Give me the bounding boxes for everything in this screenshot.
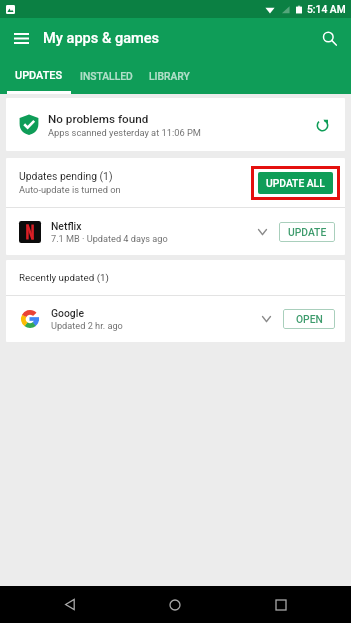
staticText: UPDATES [15, 69, 63, 82]
button[interactable]: Netflix [6, 208, 345, 255]
staticText: Updates pending (1) [19, 170, 113, 182]
button[interactable]: Home [157, 586, 193, 623]
button[interactable]: Back [52, 586, 88, 623]
staticText: Google [51, 307, 84, 319]
staticText: 7.1 MB · Updated 4 days ago [51, 233, 168, 244]
staticText: LIBRARY [149, 70, 190, 82]
button[interactable]: UPDATE [279, 222, 335, 242]
staticText: INSTALLED [80, 70, 133, 82]
button[interactable]: OPEN [283, 309, 335, 329]
staticText: OPEN [296, 313, 323, 325]
button[interactable]: Recent apps [263, 586, 299, 623]
staticText: Auto-update is turned on [19, 184, 121, 195]
button[interactable]: Expand [255, 308, 277, 330]
staticText: Recently updated (1) [19, 272, 109, 283]
staticText: Updated 2 hr. ago [51, 320, 123, 331]
button[interactable]: Open navigation drawer [4, 21, 38, 55]
button[interactable]: UPDATES [15, 57, 63, 94]
button[interactable]: INSTALLED [80, 57, 133, 94]
button[interactable]: LIBRARY [149, 57, 190, 94]
staticText: UPDATE ALL [266, 177, 325, 189]
staticText: My apps & games [43, 29, 160, 46]
button[interactable]: Search [313, 22, 345, 54]
staticText: Apps scanned yesterday at 11:06 PM [48, 127, 201, 138]
button[interactable]: UPDATE ALL [258, 172, 333, 194]
button[interactable]: Rescan apps [307, 110, 337, 140]
button[interactable]: Google [6, 296, 345, 342]
staticText: 5:14 AM [307, 3, 346, 15]
button[interactable]: Expand [251, 221, 273, 243]
staticText: No problems found [48, 112, 149, 126]
button[interactable]: No problems found [6, 98, 345, 151]
staticText: Netflix [51, 220, 82, 232]
staticText: UPDATE [288, 226, 327, 238]
